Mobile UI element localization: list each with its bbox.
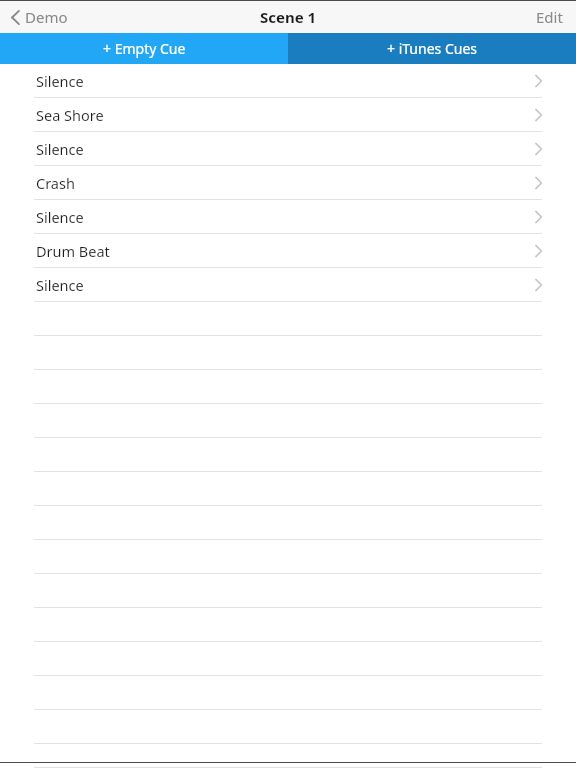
button[interactable]: + Empty Cue — [0, 33, 288, 64]
staticText: Scene 1 — [260, 7, 317, 27]
staticText: + Empty Cue — [103, 39, 186, 58]
button[interactable] — [0, 472, 576, 506]
button[interactable]: Edit — [533, 4, 566, 30]
button[interactable]: Silence — [0, 64, 576, 98]
button[interactable] — [0, 676, 576, 710]
staticText: Silence — [36, 71, 84, 91]
button[interactable] — [0, 302, 576, 336]
button[interactable] — [0, 574, 576, 608]
button[interactable] — [0, 710, 576, 744]
staticText: Silence — [36, 207, 84, 227]
button[interactable]: Crash — [0, 166, 576, 200]
staticText: Silence — [36, 275, 84, 295]
staticText: Crash — [36, 173, 75, 193]
staticText: Edit — [536, 7, 563, 27]
button[interactable]: Drum Beat — [0, 234, 576, 268]
staticText: Sea Shore — [36, 105, 104, 125]
button[interactable]: Silence — [0, 200, 576, 234]
button[interactable] — [0, 438, 576, 472]
staticText: Demo — [25, 7, 68, 27]
button[interactable]: Demo — [9, 4, 70, 30]
button[interactable]: Silence — [0, 132, 576, 166]
staticText: Drum Beat — [36, 241, 110, 261]
button[interactable]: Sea Shore — [0, 98, 576, 132]
button[interactable] — [0, 506, 576, 540]
button[interactable] — [0, 370, 576, 404]
button[interactable]: Silence — [0, 268, 576, 302]
button[interactable] — [0, 744, 576, 768]
button[interactable] — [0, 540, 576, 574]
button[interactable] — [0, 608, 576, 642]
staticText: + iTunes Cues — [387, 39, 477, 58]
button[interactable]: + iTunes Cues — [288, 33, 576, 64]
button[interactable] — [0, 336, 576, 370]
button[interactable] — [0, 404, 576, 438]
staticText: Silence — [36, 139, 84, 159]
button[interactable] — [0, 642, 576, 676]
